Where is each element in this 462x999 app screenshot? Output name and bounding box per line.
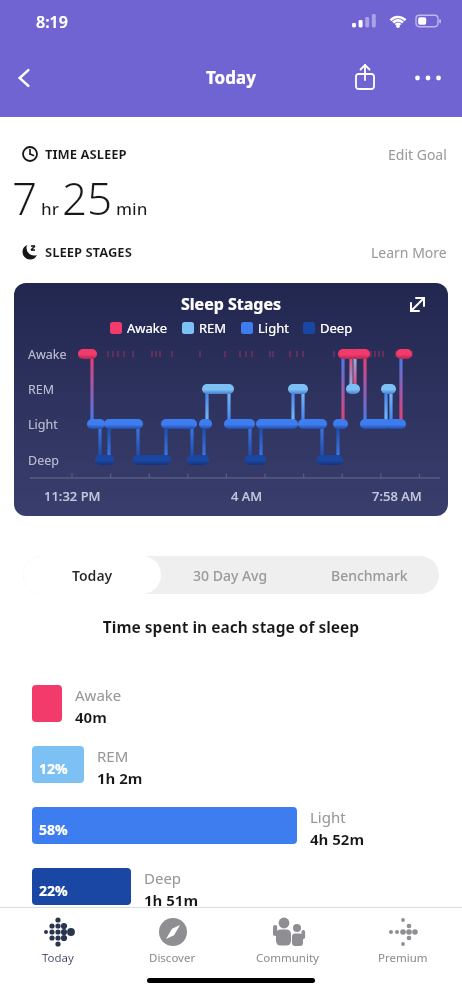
staticText: Sleep Stages (181, 293, 282, 315)
staticText: 22% (39, 881, 68, 900)
staticText: Awake (28, 346, 67, 363)
staticText: Light (310, 807, 346, 827)
staticText: Time spent in each stage of sleep (0, 616, 462, 637)
button[interactable]: Community (230, 917, 345, 970)
staticText: REM (97, 746, 129, 766)
button[interactable]: Sleep Stages (14, 283, 448, 516)
staticText: Premium (378, 950, 428, 966)
staticText: Deep (28, 452, 59, 469)
staticText: 8:19 (36, 11, 68, 33)
staticText: Awake (75, 685, 122, 705)
staticText: 1h 51m (144, 890, 199, 910)
staticText: Benchmark (331, 566, 408, 585)
staticText: Awake (127, 319, 168, 337)
staticText: 30 Day Avg (193, 566, 268, 585)
staticText: Deep (144, 868, 182, 888)
button[interactable] (408, 58, 448, 98)
staticText: 7:58 AM (372, 487, 422, 505)
button[interactable]: 58% (32, 807, 297, 844)
button[interactable]: Edit Goal (388, 145, 447, 164)
staticText: 1h 2m (97, 768, 143, 788)
button[interactable]: 22% (32, 868, 131, 905)
button[interactable]: Premium (345, 917, 460, 970)
button[interactable]: 12% (32, 746, 84, 783)
staticText: Today (72, 566, 113, 585)
button[interactable]: Learn More (371, 243, 447, 262)
staticText: REM (199, 319, 227, 337)
staticText: hr (41, 197, 59, 220)
button[interactable]: Today (23, 556, 161, 594)
button[interactable]: 30 Day Avg (161, 556, 300, 594)
staticText: Today (206, 66, 256, 89)
staticText: Discover (149, 950, 196, 966)
staticText: 7 (12, 168, 38, 228)
staticText: Deep (320, 319, 353, 337)
button[interactable]: Benchmark (300, 556, 439, 594)
staticText: Light (28, 416, 58, 433)
staticText: 58% (39, 820, 68, 839)
staticText: TIME ASLEEP (45, 145, 127, 163)
staticText: Today (42, 950, 74, 966)
staticText: 25 (62, 168, 113, 228)
staticText: Edit Goal (388, 145, 447, 164)
button[interactable] (32, 685, 62, 722)
staticText: 40m (75, 707, 107, 727)
staticText: 4h 52m (310, 829, 365, 849)
button[interactable] (345, 58, 385, 98)
staticText: min (116, 197, 148, 220)
staticText: 12% (39, 759, 68, 778)
button[interactable]: Today (0, 917, 115, 970)
button[interactable]: Discover (115, 917, 230, 970)
staticText: Learn More (371, 243, 447, 262)
staticText: REM (28, 381, 55, 398)
staticText: Light (258, 319, 289, 337)
staticText: 4 AM (231, 487, 263, 505)
button[interactable] (6, 60, 42, 96)
staticText: 11:32 PM (44, 487, 101, 505)
staticText: Community (256, 950, 319, 966)
staticText: SLEEP STAGES (45, 243, 132, 261)
